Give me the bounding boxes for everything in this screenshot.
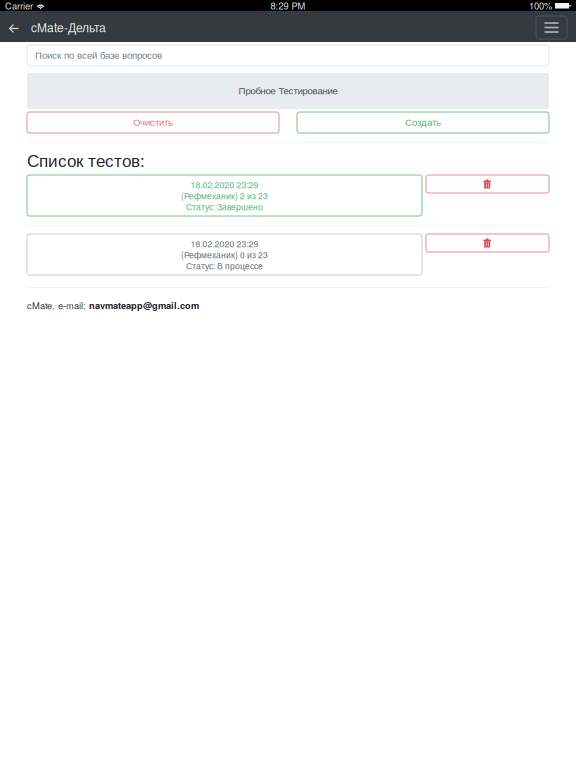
button[interactable]: 18.02.2020 23:29 — [27, 175, 422, 216]
button[interactable]: Удалить — [426, 175, 549, 193]
staticText: Поиск по всей базе вопросов — [35, 50, 162, 61]
staticText: (Рефмеханик) 0 из 23 — [181, 248, 268, 261]
staticText: Carrier — [5, 0, 33, 12]
staticText: Создать — [405, 117, 441, 128]
button[interactable]: Назад — [1, 13, 27, 44]
button[interactable]: Создать — [297, 112, 549, 133]
staticText: (Рефмеханик) 2 из 23 — [181, 189, 268, 202]
staticText: navmateapp@gmail.com — [89, 298, 199, 312]
button[interactable]: Меню — [536, 16, 567, 39]
staticText: 100% — [529, 0, 552, 12]
staticText: Список тестов: — [27, 147, 145, 172]
staticText: Пробное Тестирование — [238, 86, 337, 96]
button[interactable]: 18.02.2020 23:29 — [27, 234, 422, 275]
staticText: cMate. e-mail: — [27, 298, 89, 312]
staticText: Статус: Завершено — [186, 200, 263, 213]
button[interactable]: Очистить — [27, 112, 279, 133]
staticText: Статус: В процессе — [186, 259, 263, 272]
staticText: Очистить — [133, 117, 173, 128]
staticText: 18.02.2020 23:29 — [190, 237, 258, 250]
staticText: 8:29 PM — [270, 0, 305, 12]
button[interactable]: Поиск по всей базе вопросов — [27, 45, 549, 66]
button[interactable]: Удалить — [426, 234, 549, 252]
staticText: 18.02.2020 23:29 — [190, 178, 258, 191]
staticText: cMate-Дельта — [31, 18, 106, 36]
